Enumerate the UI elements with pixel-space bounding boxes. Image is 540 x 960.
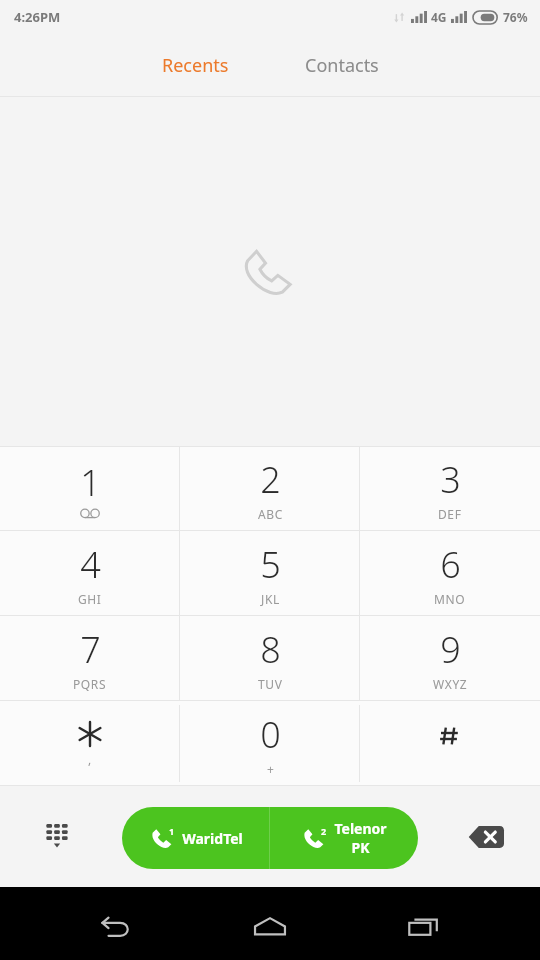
staticText: , (88, 751, 92, 767)
staticText: + (267, 761, 275, 777)
staticText: 1 (80, 458, 101, 507)
staticText: 4G (431, 9, 447, 25)
button[interactable]: 2 (270, 807, 418, 869)
staticText: WaridTel (182, 829, 243, 848)
button[interactable]: Recent apps (386, 902, 462, 952)
staticText: GHI (78, 591, 102, 607)
staticText: WXYZ (433, 676, 468, 692)
button[interactable]: 5 (180, 531, 360, 615)
button[interactable]: Backspace (462, 813, 510, 861)
button[interactable]: 3 (360, 447, 540, 530)
button[interactable]: Contacts (287, 45, 397, 86)
button[interactable]: Recents (144, 45, 247, 86)
button[interactable]: 7 (0, 616, 180, 700)
button[interactable] (360, 701, 540, 785)
staticText: DEF (438, 506, 462, 522)
button[interactable]: 4 (0, 531, 180, 615)
button[interactable]: 9 (360, 616, 540, 700)
button[interactable]: , (0, 701, 180, 785)
button[interactable]: 8 (180, 616, 360, 700)
staticText: 4 (80, 540, 101, 589)
staticText: 0 (260, 710, 281, 759)
button[interactable]: Hide dialpad (34, 814, 80, 860)
staticText: 5 (260, 540, 281, 589)
button[interactable]: 0 (180, 701, 360, 785)
staticText: 6 (440, 540, 461, 589)
button[interactable]: Back (78, 902, 154, 952)
staticText: MNO (434, 591, 466, 607)
staticText: 4:26PM (14, 8, 61, 26)
staticText: 7 (80, 625, 101, 674)
staticText: 2 (260, 455, 281, 504)
button[interactable]: 6 (360, 531, 540, 615)
staticText: Telenor PK (334, 819, 387, 857)
staticText: ABC (258, 506, 283, 522)
staticText: 1 (169, 825, 175, 837)
staticText: Recents (162, 53, 229, 78)
staticText: 9 (440, 625, 461, 674)
staticText: 3 (440, 455, 461, 504)
staticText: JKL (261, 591, 280, 607)
staticText: 2 (321, 825, 327, 837)
staticText: Contacts (305, 53, 379, 78)
staticText: 8 (260, 625, 281, 674)
button[interactable]: Home (232, 902, 308, 952)
staticText: PQRS (73, 676, 107, 692)
button[interactable]: 1 (122, 807, 269, 869)
button[interactable]: 1 (0, 447, 180, 530)
staticText: TUV (258, 676, 283, 692)
staticText: 76% (503, 9, 528, 25)
button[interactable]: 2 (180, 447, 360, 530)
